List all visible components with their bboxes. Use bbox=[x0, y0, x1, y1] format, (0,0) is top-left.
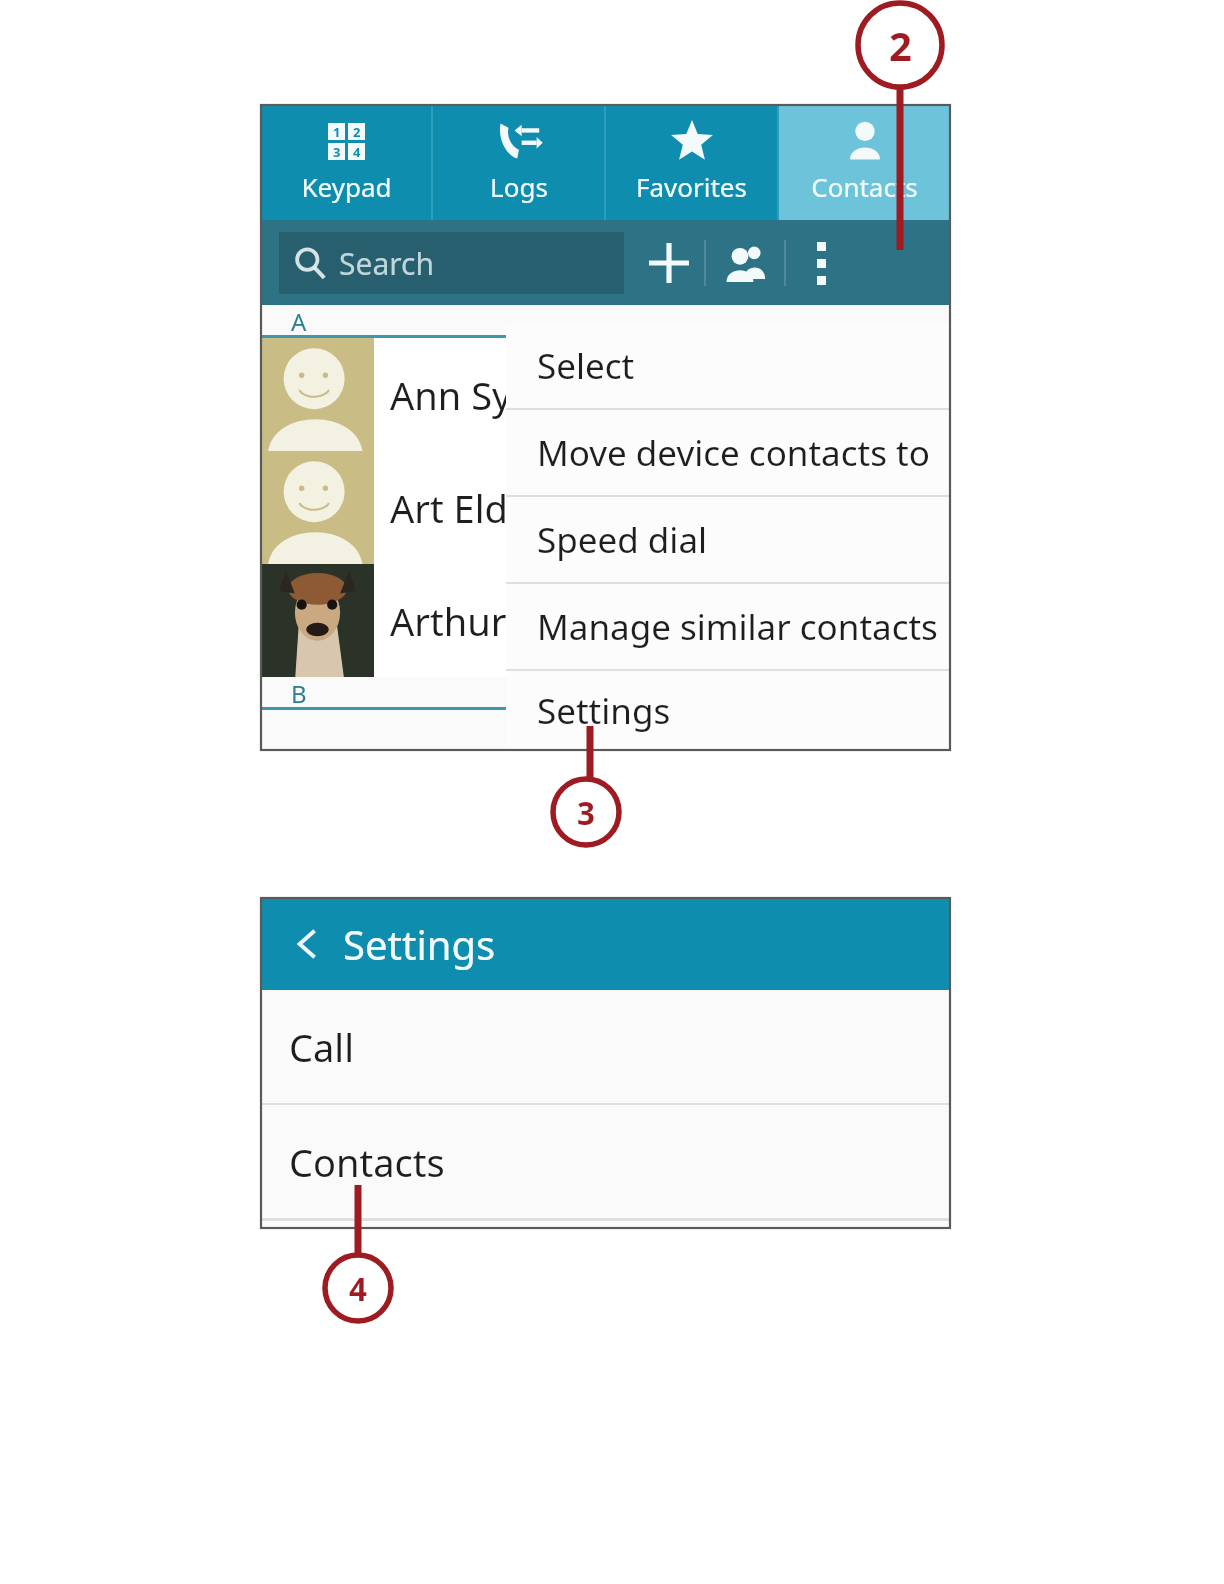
button[interactable]: Search bbox=[279, 232, 624, 294]
staticText: Select bbox=[537, 342, 635, 390]
staticText: Logs bbox=[490, 169, 548, 204]
staticText: Settings bbox=[537, 687, 671, 735]
staticText: 3 bbox=[577, 791, 595, 834]
staticText: Contacts bbox=[289, 1136, 445, 1188]
staticText: Ann Syme bbox=[390, 369, 569, 421]
staticText: Move device contacts to bbox=[537, 429, 930, 477]
staticText: 1 bbox=[333, 123, 341, 140]
staticText: 4 bbox=[349, 1267, 367, 1310]
staticText: 4 bbox=[353, 143, 361, 160]
button[interactable]: Back bbox=[285, 921, 331, 967]
button[interactable]: Contacts bbox=[779, 105, 950, 220]
button[interactable]: Logs bbox=[433, 105, 604, 220]
staticText: 2 bbox=[353, 123, 361, 140]
button[interactable]: Settings bbox=[506, 671, 950, 750]
button[interactable]: Art Eldridge bbox=[261, 451, 950, 564]
staticText: Arthur Cox bbox=[390, 595, 583, 647]
staticText: Call bbox=[289, 1021, 354, 1073]
button[interactable]: Move device contacts to bbox=[506, 410, 950, 495]
button[interactable]: Speed dial bbox=[506, 497, 950, 582]
staticText: Contacts bbox=[811, 169, 918, 204]
button[interactable]: 1 bbox=[261, 105, 431, 220]
button[interactable]: Select bbox=[506, 323, 950, 408]
staticText: Speed dial bbox=[537, 516, 708, 564]
button[interactable]: Contacts bbox=[261, 1105, 950, 1218]
button[interactable]: More options bbox=[786, 228, 856, 298]
staticText: A bbox=[291, 305, 307, 335]
staticText: B bbox=[291, 677, 307, 707]
button[interactable]: Groups bbox=[706, 224, 784, 302]
staticText: Art Eldridge bbox=[390, 482, 602, 534]
staticText: Search bbox=[339, 243, 434, 284]
button[interactable]: Manage similar contacts bbox=[506, 584, 950, 669]
button[interactable]: Ann Syme bbox=[261, 338, 950, 451]
staticText: Manage similar contacts bbox=[537, 603, 938, 651]
button[interactable]: Arthur Cox bbox=[261, 564, 950, 677]
button[interactable]: Call bbox=[261, 990, 950, 1103]
staticText: Keypad bbox=[301, 169, 392, 204]
staticText: 2 bbox=[889, 18, 912, 72]
button[interactable]: Favorites bbox=[606, 105, 777, 220]
staticText: Settings bbox=[343, 917, 496, 971]
staticText: Favorites bbox=[636, 169, 747, 204]
button[interactable]: Add contact bbox=[634, 228, 704, 298]
staticText: 3 bbox=[333, 143, 341, 160]
